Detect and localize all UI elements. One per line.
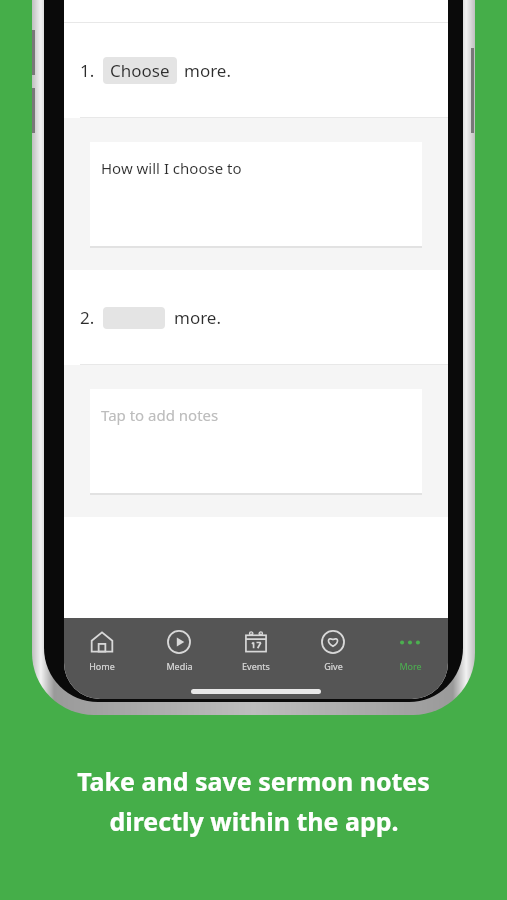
staticText: Events bbox=[242, 660, 270, 672]
button[interactable]: Tap to add notes bbox=[90, 389, 422, 493]
button[interactable]: 2. bbox=[64, 270, 448, 365]
button[interactable]: More bbox=[379, 627, 441, 674]
staticText: Give bbox=[324, 660, 343, 672]
staticText: 2. bbox=[80, 306, 95, 329]
button[interactable]: 1. bbox=[64, 23, 448, 118]
staticText: Home bbox=[89, 660, 115, 672]
staticText: Tap to add notes bbox=[101, 405, 219, 425]
button[interactable]: Home bbox=[71, 627, 133, 674]
staticText: more. bbox=[174, 306, 222, 329]
staticText: 1. bbox=[80, 59, 95, 82]
button[interactable]: Give bbox=[302, 627, 364, 674]
button[interactable]: Media bbox=[148, 627, 210, 674]
button[interactable]: How will I choose to bbox=[90, 142, 422, 246]
staticText: Choose bbox=[110, 59, 170, 82]
staticText: directly within the app. bbox=[109, 804, 399, 838]
staticText: Take and save sermon notes bbox=[77, 764, 430, 798]
staticText: more. bbox=[184, 59, 232, 82]
staticText: How will I choose to bbox=[101, 158, 242, 178]
staticText: Media bbox=[166, 660, 193, 672]
button[interactable]: Events bbox=[225, 627, 287, 674]
staticText: More bbox=[399, 660, 422, 672]
